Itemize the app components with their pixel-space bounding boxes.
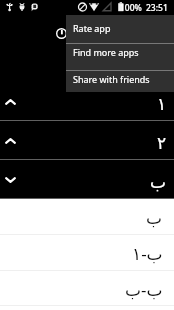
staticText: Rate app: [73, 22, 111, 34]
button[interactable]: Rate app: [66, 15, 174, 43]
staticText: ب-١: [132, 242, 163, 265]
button[interactable]: Loading: [48, 20, 74, 46]
button[interactable]: ب: [0, 199, 174, 235]
staticText: 100%: [120, 2, 142, 14]
staticText: ب: [150, 172, 167, 192]
staticText: ب-ب: [125, 278, 163, 301]
staticText: ب: [146, 208, 163, 228]
button[interactable]: Find more apps: [66, 44, 174, 70]
staticText: ١: [157, 94, 167, 114]
staticText: Find more apps: [73, 46, 139, 58]
button[interactable]: ب-١: [0, 235, 174, 271]
button[interactable]: Share with friends: [66, 71, 174, 92]
staticText: ٢: [157, 133, 167, 153]
button[interactable]: ١: [0, 82, 174, 121]
staticText: Share with friends: [73, 73, 150, 85]
staticText: 23:51: [146, 2, 168, 14]
button[interactable]: ب-ب: [0, 271, 174, 306]
button[interactable]: ٢: [0, 121, 174, 160]
button[interactable]: ب: [0, 160, 174, 199]
